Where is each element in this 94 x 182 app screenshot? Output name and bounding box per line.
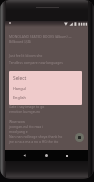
button[interactable]: Back	[20, 150, 28, 161]
staticText: Nan nan nolleoge sheya thank ho	[9, 134, 63, 139]
staticText: Select	[13, 75, 27, 82]
staticText: joongan-eul tto nwa i	[9, 124, 43, 129]
button[interactable]: Stop recording	[75, 133, 84, 142]
staticText: Just feel it bloom sho	[9, 53, 43, 58]
button[interactable]: Hangul	[9, 85, 82, 92]
staticText: Billboard 話題	[9, 39, 31, 44]
staticText: English	[13, 95, 26, 100]
staticText: Hangul	[13, 86, 26, 91]
staticText: moolyang e	[9, 129, 28, 134]
button[interactable]: Home	[42, 150, 50, 161]
staticText: Wow wow	[9, 119, 25, 124]
button[interactable]: English	[9, 94, 82, 101]
button[interactable]: Recent apps	[63, 150, 71, 161]
staticText: jne a na a ma a no a HG the tto	[9, 139, 59, 144]
staticText: MONOLAND SEATED BOOKS (Album) —	[9, 34, 72, 39]
staticText: Tendless compare now languages	[9, 60, 63, 65]
staticText: Gate i say image to go	[9, 104, 45, 109]
staticText: emotion bumgeuro	[9, 109, 41, 114]
